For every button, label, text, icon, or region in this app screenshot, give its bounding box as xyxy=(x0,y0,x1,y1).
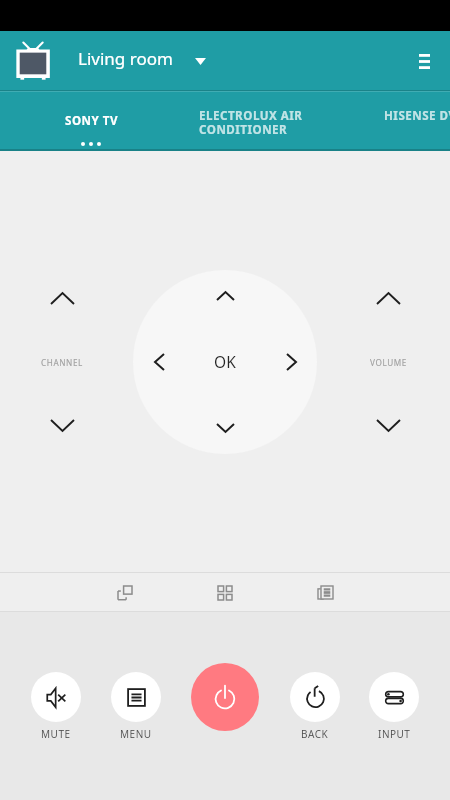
button[interactable]: Apps xyxy=(175,573,275,612)
staticText: HISENSE DVD xyxy=(384,108,450,124)
button[interactable]: Mute xyxy=(31,672,81,741)
button[interactable]: Menu xyxy=(400,37,448,85)
button[interactable]: Down xyxy=(195,406,255,450)
button[interactable]: Left xyxy=(137,332,181,392)
staticText: SONY TV xyxy=(65,113,118,129)
staticText: BACK xyxy=(301,727,329,741)
button[interactable]: Channel up xyxy=(20,270,104,326)
staticText: ELECTROLUX AIR CONDITIONER xyxy=(199,108,303,137)
button[interactable]: OK xyxy=(189,326,261,398)
button[interactable]: Channel down xyxy=(20,397,104,453)
button[interactable]: Volume up xyxy=(346,270,430,326)
button[interactable]: Living room xyxy=(78,37,206,79)
button[interactable]: Back xyxy=(290,672,340,741)
button[interactable]: Volume down xyxy=(346,397,430,453)
button[interactable]: Right xyxy=(269,332,313,392)
staticText: MUTE xyxy=(41,727,71,741)
staticText: INPUT xyxy=(378,727,411,741)
button[interactable]: Up xyxy=(195,274,255,318)
button[interactable]: Power xyxy=(191,663,259,731)
button[interactable]: Input xyxy=(369,672,419,741)
button[interactable]: Guide xyxy=(275,573,375,612)
button[interactable]: Picture in picture xyxy=(75,573,175,612)
button[interactable]: Menu xyxy=(111,672,161,741)
staticText: Living room xyxy=(78,47,173,70)
staticText: MENU xyxy=(120,727,152,741)
staticText: CHANNEL xyxy=(41,357,83,368)
button[interactable]: Device xyxy=(9,36,57,86)
button[interactable]: ELECTROLUX AIR CONDITIONER xyxy=(175,91,335,151)
button[interactable]: HISENSE DVD xyxy=(340,91,450,151)
button[interactable]: SONY TV xyxy=(10,91,170,151)
staticText: OK xyxy=(214,351,237,372)
staticText: VOLUME xyxy=(370,357,407,368)
